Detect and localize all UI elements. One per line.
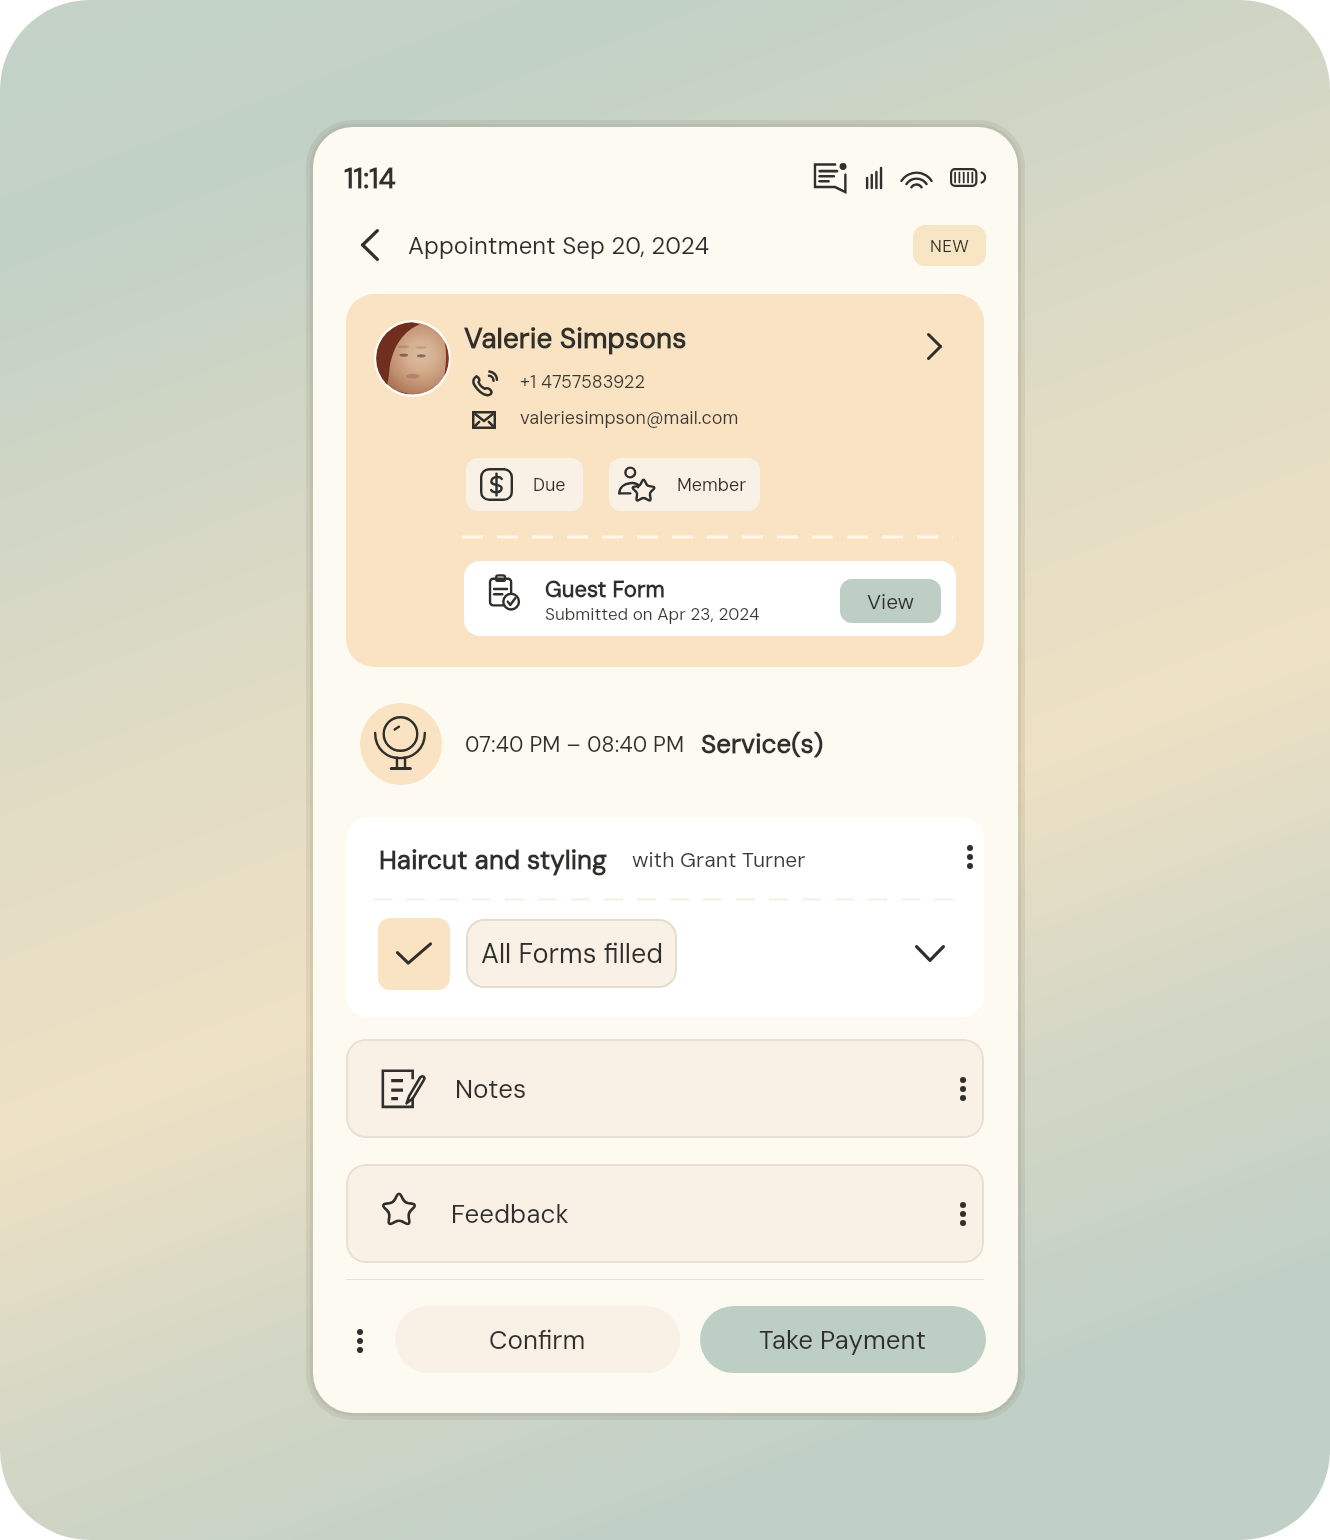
staticText: with Grant Turner <box>632 846 806 873</box>
staticText: Appointment Sep 20, 2024 <box>408 230 710 261</box>
staticText: Valerie Simpsons <box>464 320 687 356</box>
staticText: Submitted on Apr 23, 2024 <box>545 603 760 625</box>
staticText: 07:40 PM – 08:40 PM <box>465 730 685 759</box>
staticText: Member <box>677 473 747 496</box>
staticText: View <box>867 588 915 615</box>
staticText: Confirm <box>489 1323 586 1357</box>
staticText: All Forms filled <box>481 936 663 971</box>
button[interactable]: Confirm <box>395 1306 680 1373</box>
staticText: Feedback <box>451 1197 569 1231</box>
staticText: Due <box>533 473 566 496</box>
staticText: Notes <box>455 1072 527 1106</box>
staticText: +1 4757583922 <box>520 370 646 393</box>
staticText: Guest Form <box>545 575 665 604</box>
button[interactable]: Notes <box>346 1039 984 1138</box>
button[interactable]: All Forms filled <box>466 919 677 988</box>
button[interactable]: Feedback options <box>941 1192 984 1236</box>
button[interactable]: Take Payment <box>700 1306 986 1373</box>
button[interactable]: More options <box>338 1319 382 1363</box>
staticText: 11:14 <box>344 160 396 196</box>
button[interactable]: View <box>840 579 941 623</box>
button[interactable]: Guest Form <box>464 561 956 636</box>
button[interactable]: Feedback <box>346 1164 984 1263</box>
button[interactable]: NEW <box>913 225 986 266</box>
staticText: NEW <box>930 235 970 257</box>
button[interactable]: Valerie Simpsons <box>346 294 984 667</box>
button[interactable]: Member <box>609 458 760 511</box>
button[interactable]: Due <box>466 458 583 511</box>
button[interactable]: Back <box>346 221 394 269</box>
button[interactable]: Expand service <box>906 929 954 977</box>
staticText: Service(s) <box>701 727 824 761</box>
button[interactable]: All forms filled <box>378 918 450 990</box>
staticText: Take Payment <box>759 1323 927 1357</box>
button[interactable]: Service options <box>948 835 984 879</box>
button[interactable]: Open customer profile <box>912 320 956 372</box>
staticText: valeriesimpson@mail.com <box>520 406 739 429</box>
button[interactable]: Notes options <box>941 1067 984 1111</box>
staticText: Haircut and styling <box>379 843 607 877</box>
